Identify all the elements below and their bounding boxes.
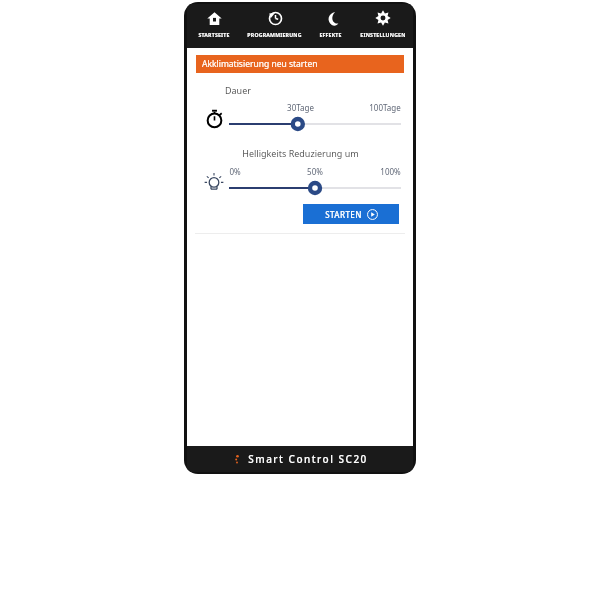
staticText: 50% (307, 166, 323, 177)
button[interactable]: STARTEN (303, 204, 399, 224)
staticText: EINSTELLUNGEN (360, 31, 406, 38)
other: PROGRAMMIERUNG (266, 9, 284, 27)
other: STARTSEITE (205, 9, 223, 27)
button[interactable]: EFFEKTE (309, 4, 352, 48)
staticText: EFFEKTE (319, 31, 342, 38)
button[interactable]: Slider (229, 179, 401, 197)
button[interactable]: STARTSEITE (187, 4, 240, 48)
staticText: STARTEN (325, 209, 362, 220)
button[interactable]: EINSTELLUNGEN (352, 4, 413, 48)
staticText: 100% (380, 166, 401, 177)
staticText: PROGRAMMIERUNG (247, 31, 302, 38)
other: EFFEKTE (322, 9, 340, 27)
button[interactable]: PROGRAMMIERUNG (240, 4, 309, 48)
staticText: 100Tage (369, 102, 401, 113)
staticText: 0% (229, 166, 241, 177)
staticText: Helligkeits Reduzierung um (242, 147, 359, 159)
staticText: STARTSEITE (198, 31, 230, 38)
button[interactable]: Slider (229, 115, 401, 133)
staticText: Smart Control SC20 (248, 452, 368, 466)
staticText: Dauer (225, 84, 251, 96)
button[interactable]: Akklimatisierung neu starten (196, 55, 404, 73)
staticText: Akklimatisierung neu starten (202, 58, 318, 70)
staticText: 30Tage (287, 102, 314, 113)
other: EINSTELLUNGEN (374, 9, 392, 27)
